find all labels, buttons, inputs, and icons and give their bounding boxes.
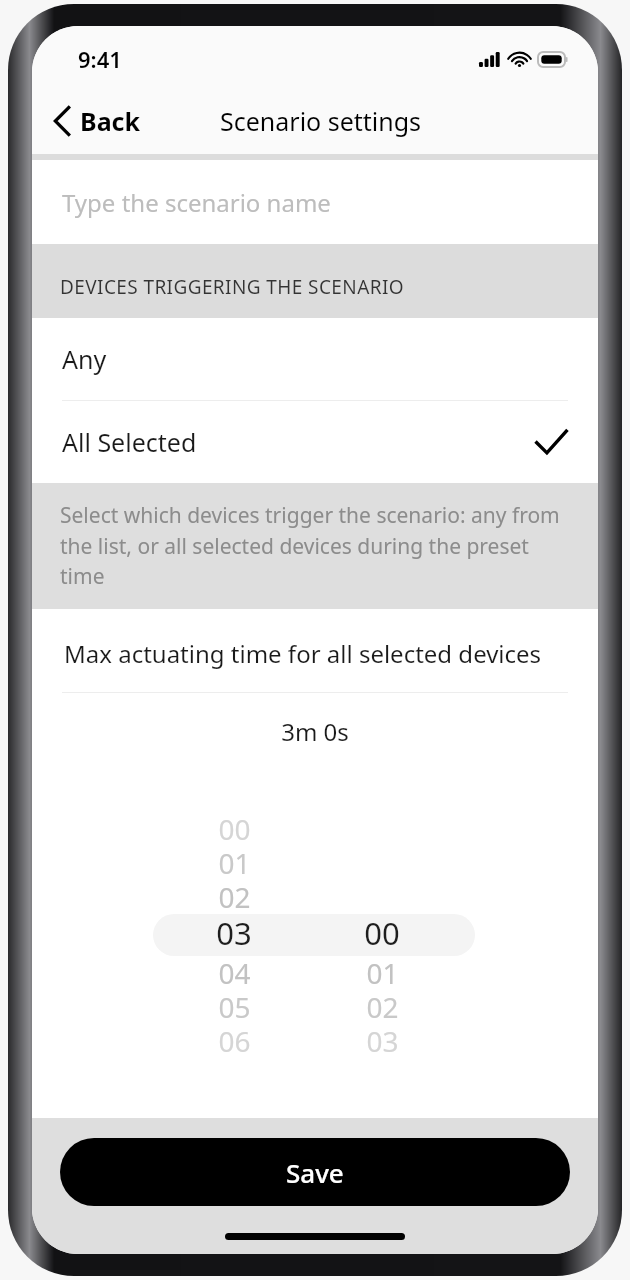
staticText: 01 [218,844,251,878]
staticText: 03 [216,912,252,954]
staticText: 06 [218,1022,251,1056]
staticText: Type the scenario name [62,186,331,219]
staticText: 02 [218,878,251,912]
button[interactable]: 00 [32,810,598,1060]
staticText: 01 [366,954,399,988]
staticText: DEVICES TRIGGERING THE SCENARIO [60,274,404,300]
staticText: Any [62,342,107,376]
button[interactable]: Save [60,1138,570,1206]
staticText: All Selected [62,425,197,459]
staticText: 9:41 [78,44,122,74]
staticText: 03 [366,1022,399,1056]
staticText: Select which devices trigger the scenari… [60,501,572,590]
staticText: 00 [364,912,400,954]
button[interactable]: All Selected [32,401,598,483]
button[interactable]: Type the scenario name [32,160,598,244]
staticText: 00 [218,810,251,844]
staticText: Scenario settings [220,104,422,138]
staticText: 05 [218,988,251,1022]
staticText: Max actuating time for all selected devi… [64,637,542,670]
staticText: 04 [218,954,251,988]
staticText: Back [80,104,141,138]
button[interactable]: Any [32,318,598,400]
button[interactable]: Back [32,98,155,144]
staticText: 02 [366,988,399,1022]
staticText: 3m 0s [32,715,598,748]
staticText: Save [286,1155,344,1190]
